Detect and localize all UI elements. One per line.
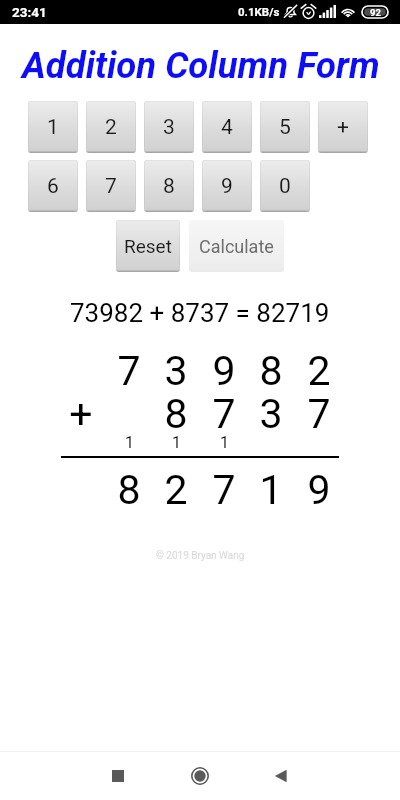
staticText: 7 (105, 174, 117, 199)
staticText: 73982 + 8737 = 82719 (70, 298, 330, 328)
staticText: 92 (370, 7, 381, 18)
staticText: 9 (307, 466, 331, 514)
button[interactable]: Home (180, 751, 220, 800)
staticText: 8 (259, 347, 283, 395)
staticText: 2 (164, 466, 188, 514)
button[interactable]: 9 (202, 160, 252, 212)
button[interactable]: 0 (260, 160, 310, 212)
button[interactable]: 5 (260, 101, 310, 153)
staticText: 1 (220, 433, 229, 452)
staticText: 23:41 (12, 4, 47, 20)
staticText: 5 (279, 115, 291, 140)
staticText: 1 (125, 433, 134, 452)
button[interactable]: 2 (86, 101, 136, 153)
staticText: © 2019 Bryan Wang (156, 550, 245, 562)
staticText: 6 (47, 174, 59, 199)
button[interactable]: Back (261, 751, 301, 800)
button[interactable]: 6 (28, 160, 78, 212)
button[interactable]: 7 (86, 160, 136, 212)
button[interactable]: Calculate (189, 220, 284, 272)
staticText: 9 (221, 174, 233, 199)
staticText: 7 (212, 466, 236, 514)
button[interactable]: + (318, 101, 368, 153)
staticText: 3 (164, 347, 188, 395)
button[interactable]: 1 (28, 101, 78, 153)
staticText: 0 (279, 174, 291, 199)
staticText: Calculate (199, 236, 274, 257)
staticText: 7 (117, 347, 141, 395)
staticText: Addition Column Form (22, 44, 380, 87)
button[interactable]: Reset (116, 220, 180, 272)
staticText: 8 (117, 466, 141, 514)
staticText: 9 (212, 347, 236, 395)
staticText: 7 (307, 390, 331, 438)
staticText: 3 (259, 390, 283, 438)
staticText: 7 (212, 390, 236, 438)
button[interactable]: Recents (98, 751, 138, 800)
button[interactable]: 4 (202, 101, 252, 153)
button[interactable]: 3 (144, 101, 194, 153)
staticText: 4 (221, 115, 233, 140)
staticText: + (337, 115, 349, 140)
staticText: 3 (163, 115, 175, 140)
staticText: 1 (47, 115, 59, 140)
button[interactable]: 8 (144, 160, 194, 212)
staticText: 8 (163, 174, 175, 199)
staticText: Reset (124, 235, 172, 257)
staticText: 2 (307, 347, 331, 395)
staticText: 0.1KB/s (238, 5, 280, 18)
staticText: + (69, 390, 93, 438)
staticText: 8 (164, 390, 188, 438)
staticText: 1 (259, 466, 283, 514)
staticText: 1 (172, 433, 181, 452)
staticText: 2 (105, 115, 117, 140)
